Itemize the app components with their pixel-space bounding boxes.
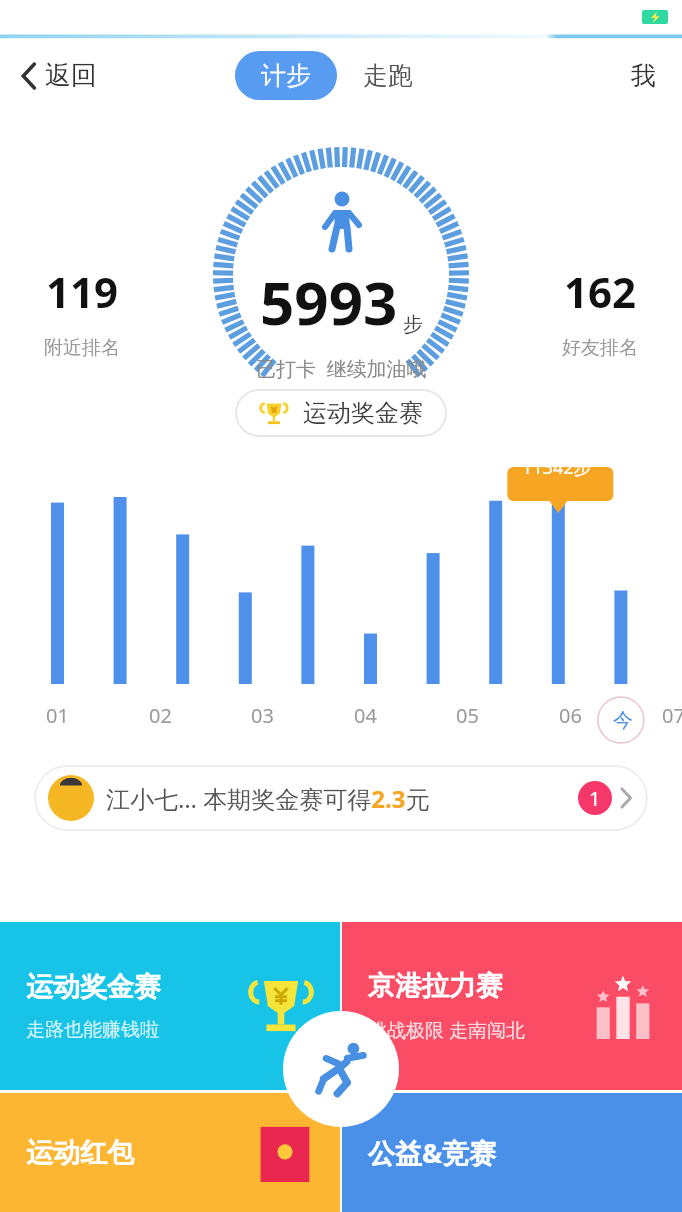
button[interactable]: 计步 bbox=[235, 51, 337, 100]
staticText: 计步 bbox=[261, 60, 311, 91]
staticText: 05 bbox=[456, 702, 479, 729]
staticText: 06 bbox=[559, 702, 582, 729]
staticText: 走路也能赚钱啦 bbox=[26, 1018, 159, 1042]
button[interactable]: 江小七… 本期奖金赛可得2.3元 bbox=[34, 765, 648, 831]
staticText: 02 bbox=[149, 702, 172, 729]
staticText: 步 bbox=[403, 312, 423, 337]
button[interactable]: 运动红包 bbox=[0, 1093, 340, 1212]
staticText: 11342步 bbox=[522, 455, 592, 480]
staticText: 119 bbox=[46, 263, 119, 320]
staticText: 今 bbox=[613, 708, 633, 733]
staticText: 162 bbox=[564, 263, 637, 320]
staticText: 07 bbox=[662, 702, 682, 729]
staticText: 我 bbox=[631, 60, 656, 91]
button[interactable]: 返回 bbox=[14, 53, 103, 98]
button[interactable]: 运动奖金赛 bbox=[235, 389, 447, 437]
staticText: 挑战极限 走南闯北 bbox=[368, 1017, 525, 1043]
staticText: 1 bbox=[589, 785, 601, 812]
staticText: 返回 bbox=[45, 59, 97, 92]
staticText: 04 bbox=[354, 702, 377, 729]
button[interactable]: 走跑 bbox=[353, 51, 423, 100]
staticText: 已打卡 继续加油哦 bbox=[256, 355, 427, 382]
staticText: 公益&竞赛 bbox=[368, 1134, 497, 1171]
button[interactable]: Start running bbox=[283, 1011, 399, 1127]
button[interactable]: 京港拉力赛 bbox=[342, 922, 682, 1090]
staticText: 03 bbox=[251, 702, 274, 729]
button[interactable]: 我 bbox=[623, 52, 664, 99]
staticText: 运动奖金赛 bbox=[303, 398, 423, 428]
button[interactable]: 公益&竞赛 bbox=[342, 1093, 682, 1212]
staticText: 好友排名 bbox=[562, 336, 638, 360]
button[interactable]: 运动奖金赛 bbox=[0, 922, 340, 1090]
staticText: 附近排名 bbox=[44, 336, 120, 360]
staticText: 走跑 bbox=[363, 60, 413, 91]
staticText: 江小七… 本期奖金赛可得2.3元 bbox=[106, 782, 430, 815]
staticText: 5993 bbox=[260, 261, 398, 343]
staticText: 01 bbox=[46, 702, 69, 729]
staticText: 运动红包 bbox=[26, 1136, 134, 1170]
staticText: 运动奖金赛 bbox=[26, 970, 161, 1004]
staticText: 京港拉力赛 bbox=[368, 969, 503, 1003]
